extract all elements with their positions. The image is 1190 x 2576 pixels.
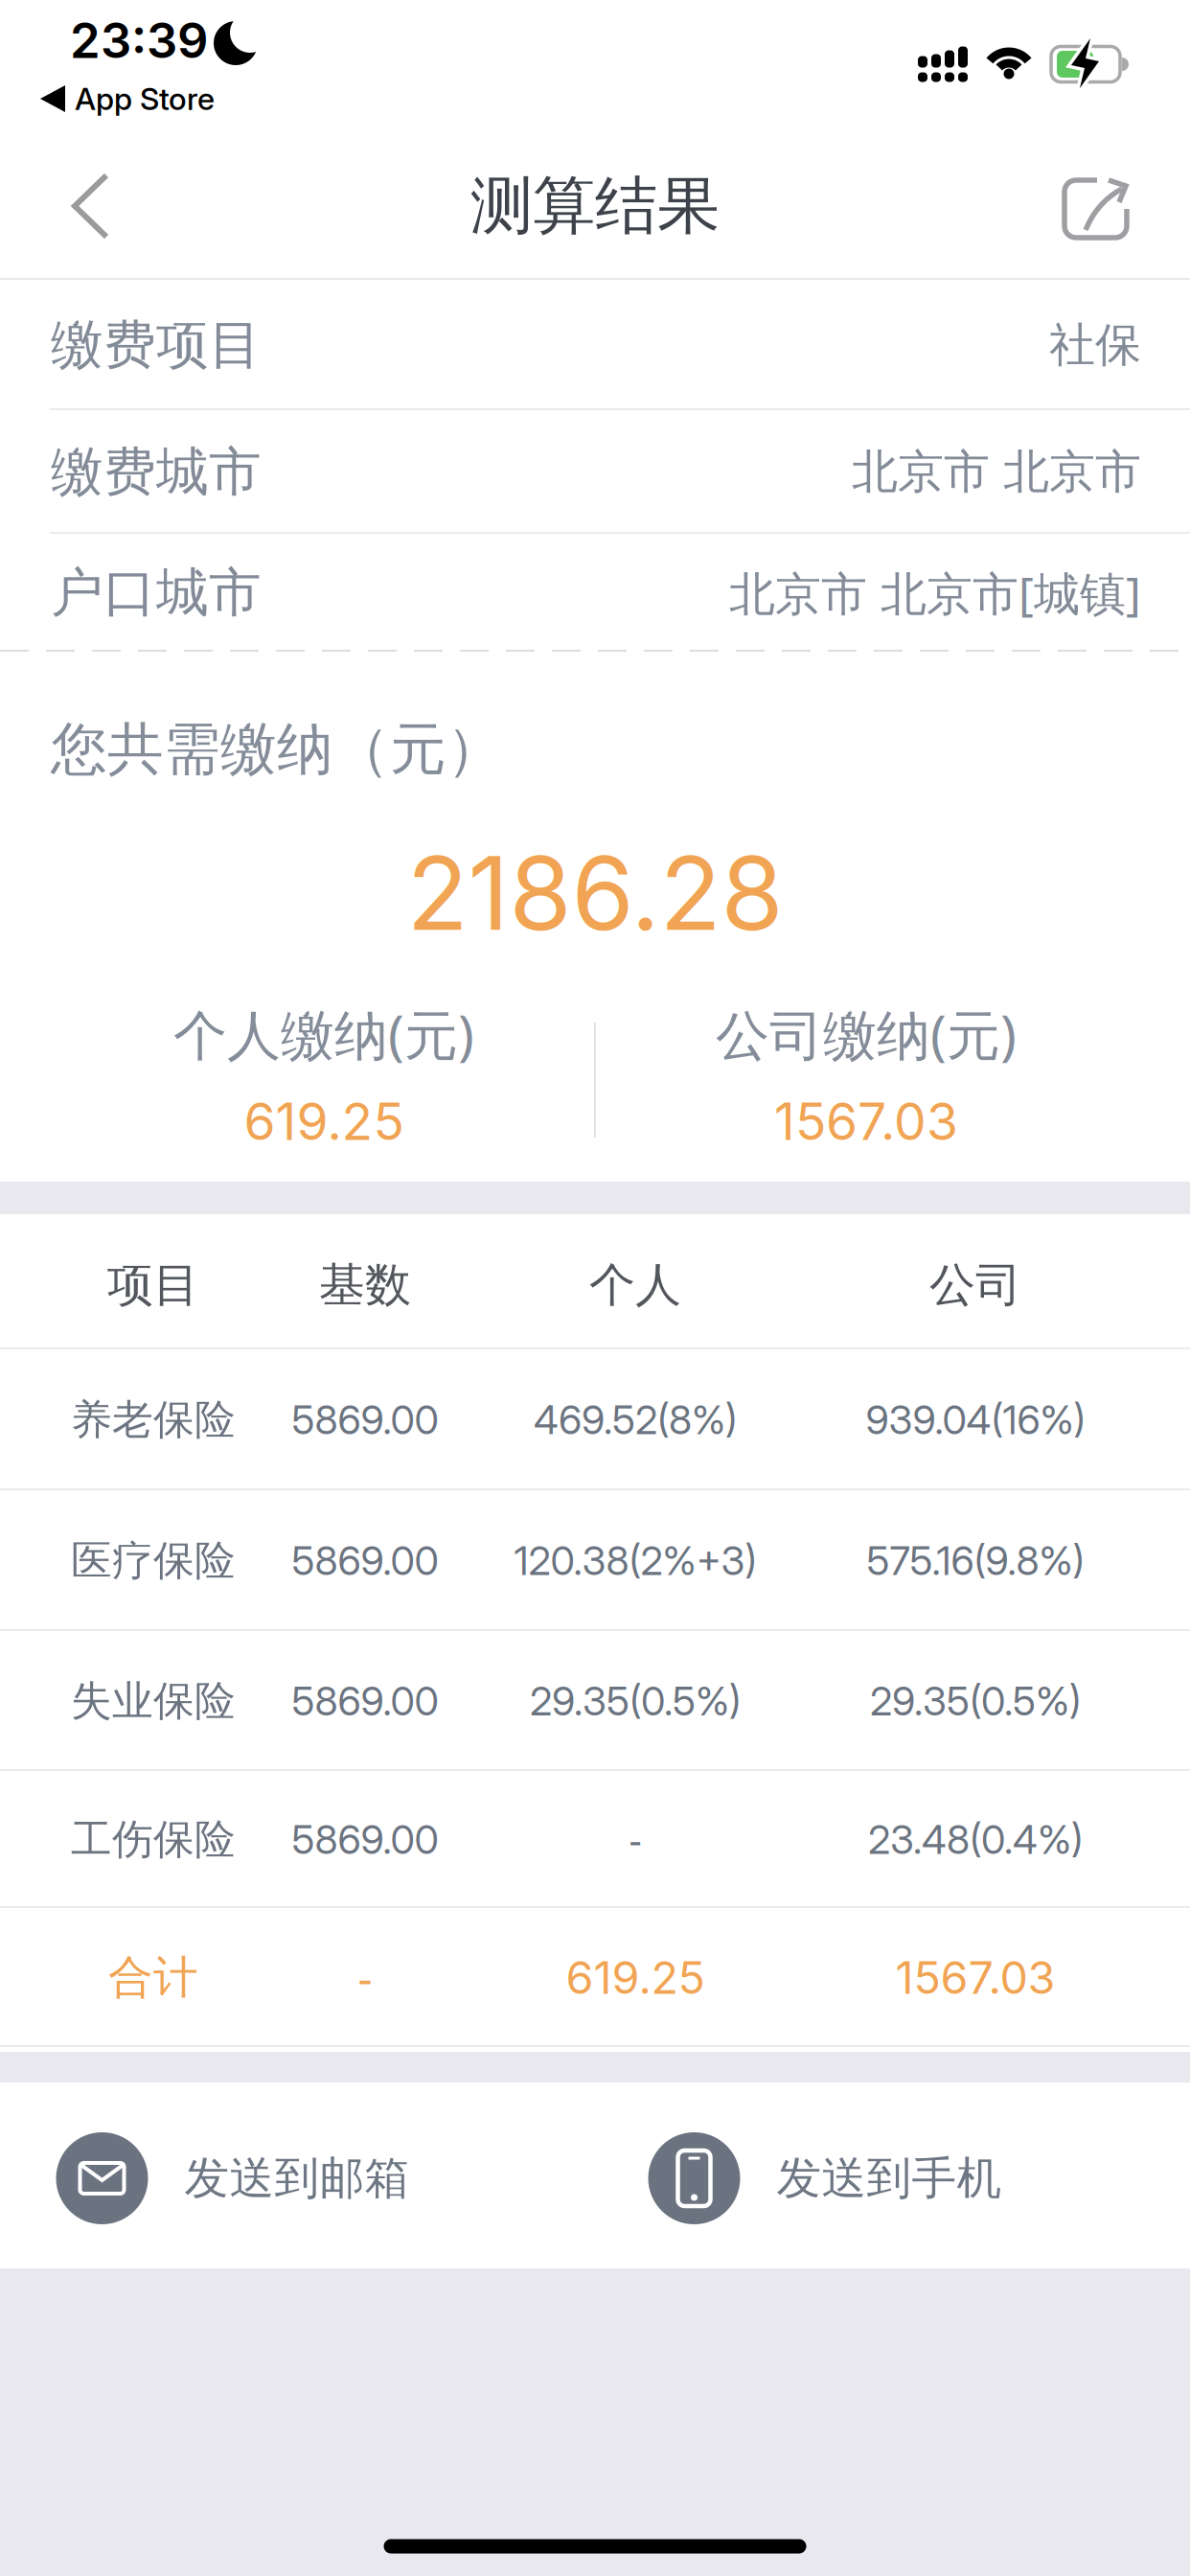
- staticText: 619.25: [566, 1950, 705, 2005]
- staticText: 您共需缴纳（元）: [51, 715, 503, 784]
- staticText: 发送到手机: [777, 2151, 1002, 2206]
- staticText: 缴费城市: [51, 440, 262, 504]
- staticText: App Store: [75, 80, 215, 117]
- staticText: 社保: [1049, 317, 1141, 373]
- staticText: 基数: [319, 1257, 411, 1313]
- staticText: 23.48(0.4%): [868, 1816, 1083, 1863]
- staticText: 工伤保险: [71, 1814, 236, 1865]
- staticText: 1567.03: [895, 1950, 1055, 2005]
- staticText: 缴费项目: [51, 313, 262, 377]
- staticText: 29.35(0.5%): [870, 1677, 1081, 1725]
- button[interactable]: Back: [72, 173, 110, 239]
- staticText: 测算结果: [470, 168, 720, 244]
- staticText: 公司: [929, 1257, 1021, 1313]
- staticText: 养老保险: [71, 1395, 236, 1445]
- staticText: 619.25: [244, 1090, 404, 1152]
- staticText: 939.04(16%): [866, 1396, 1085, 1444]
- staticText: 北京市 北京市[城镇]: [729, 562, 1141, 623]
- staticText: 项目: [107, 1257, 199, 1313]
- staticText: 发送到邮箱: [184, 2151, 410, 2206]
- button[interactable]: Share: [1064, 177, 1135, 242]
- staticText: -: [358, 1948, 372, 2007]
- staticText: 120.38(2%+3): [514, 1537, 756, 1585]
- staticText: 1567.03: [774, 1090, 958, 1152]
- staticText: 469.52(8%): [534, 1396, 737, 1444]
- staticText: 5869.00: [292, 1816, 438, 1863]
- staticText: 23:39: [70, 11, 208, 70]
- button[interactable]: App Store: [40, 80, 215, 117]
- staticText: 失业保险: [71, 1676, 236, 1726]
- staticText: 29.35(0.5%): [530, 1677, 741, 1725]
- staticText: 医疗保险: [71, 1536, 236, 1586]
- staticText: 5869.00: [292, 1396, 438, 1444]
- staticText: 2186.28: [407, 832, 783, 954]
- staticText: -: [629, 1813, 641, 1866]
- staticText: 公司缴纳(元): [716, 998, 1017, 1070]
- staticText: 北京市 北京市: [852, 444, 1141, 500]
- button[interactable]: 发送到手机: [648, 2132, 1002, 2224]
- staticText: 合计: [108, 1950, 198, 2005]
- staticText: 5869.00: [292, 1677, 438, 1725]
- staticText: 个人: [589, 1257, 681, 1313]
- staticText: 5869.00: [292, 1537, 438, 1585]
- staticText: 575.16(9.8%): [867, 1537, 1084, 1585]
- staticText: 个人缴纳(元): [173, 998, 474, 1070]
- staticText: 户口城市: [51, 561, 262, 625]
- button[interactable]: 发送到邮箱: [56, 2132, 410, 2224]
